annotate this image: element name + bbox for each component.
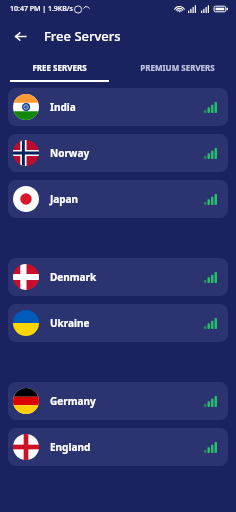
staticText: England [50, 440, 91, 454]
button[interactable]: FREE SERVERS [0, 54, 118, 80]
staticText: Denmark [50, 270, 97, 284]
staticText: Japan [50, 192, 79, 206]
staticText: Ukraine [50, 316, 90, 330]
staticText: Norway [50, 146, 90, 160]
button[interactable]: Japan [8, 180, 228, 218]
button[interactable]: Denmark [8, 258, 228, 296]
staticText: FREE SERVERS [32, 62, 87, 73]
staticText: Germany [50, 394, 96, 408]
button[interactable]: Ukraine [8, 304, 228, 342]
button[interactable]: England [8, 428, 228, 466]
button[interactable]: PREMIUM SERVERS [118, 54, 236, 80]
button[interactable]: India [8, 88, 228, 126]
staticText: India [50, 100, 76, 114]
button[interactable]: Norway [8, 134, 228, 172]
button[interactable]: Back [6, 22, 34, 50]
staticText: Free Servers [44, 27, 121, 45]
staticText: PREMIUM SERVERS [140, 62, 215, 73]
button[interactable]: Germany [8, 382, 228, 420]
staticText: 10:47 PM | 1.9KB/s [10, 4, 73, 14]
